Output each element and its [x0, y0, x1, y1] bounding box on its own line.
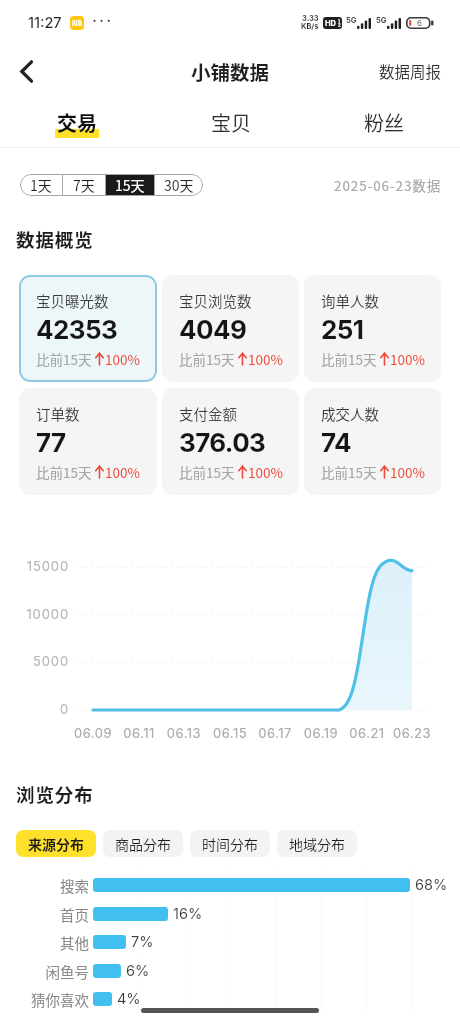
staticText: 浏览分布: [16, 781, 94, 808]
staticText: 1: [338, 19, 340, 24]
staticText: 其他: [0, 932, 89, 953]
staticText: 06.15: [205, 725, 255, 741]
staticText: 5G: [376, 16, 387, 25]
staticText: 06.21: [342, 725, 392, 741]
staticText: 3.33: [302, 14, 319, 23]
staticText: KB/s: [301, 22, 319, 31]
staticText: 订单数: [36, 403, 80, 424]
button[interactable]: 1天: [20, 174, 62, 196]
staticText: 比前15天: [179, 349, 235, 369]
staticText: 比前15天: [36, 462, 92, 482]
staticText: 粉丝: [364, 108, 404, 137]
staticText: 搜索: [0, 875, 89, 896]
staticText: 商品分布: [115, 834, 171, 854]
staticText: 10000: [0, 606, 69, 622]
staticText: 16%: [173, 905, 203, 923]
staticText: 5000: [0, 653, 69, 669]
staticText: 支付金额: [179, 403, 237, 424]
staticText: 比前15天: [321, 349, 377, 369]
button[interactable]: 支付金额: [162, 388, 299, 495]
staticText: 7%: [131, 933, 154, 951]
staticText: 100%: [390, 349, 425, 369]
staticText: 2025-06-23数据: [334, 175, 442, 195]
staticText: 询单人数: [321, 290, 379, 311]
staticText: 06.11: [114, 725, 164, 741]
button[interactable]: 30天: [155, 174, 203, 196]
staticText: 交易: [57, 108, 97, 137]
staticText: 15000: [0, 558, 69, 574]
staticText: 6: [417, 18, 422, 28]
staticText: 376.03: [179, 427, 266, 458]
staticText: 宝贝浏览数: [179, 290, 252, 311]
staticText: 时间分布: [202, 834, 258, 854]
button[interactable]: 订单数: [19, 388, 157, 495]
staticText: 宝贝曝光数: [36, 290, 109, 311]
staticText: 100%: [105, 462, 140, 482]
button[interactable]: 7天: [63, 174, 105, 196]
staticText: 100%: [248, 349, 283, 369]
staticText: 地域分布: [289, 834, 345, 854]
staticText: 0: [0, 701, 69, 717]
button[interactable]: 询单人数: [304, 275, 441, 382]
staticText: 猜你喜欢: [0, 989, 89, 1010]
staticText: 68%: [415, 876, 448, 894]
staticText: ···: [91, 11, 113, 28]
staticText: 6%: [126, 962, 150, 980]
staticText: 06.13: [159, 725, 209, 741]
staticText: 闲鱼: [72, 19, 83, 27]
staticText: 闲鱼号: [0, 961, 89, 982]
staticText: 宝贝: [211, 108, 251, 137]
staticText: 比前15天: [179, 462, 235, 482]
staticText: 77: [36, 427, 66, 458]
button[interactable]: 宝贝曝光数: [19, 275, 157, 382]
staticText: 1天: [30, 175, 52, 195]
button[interactable]: 成交人数: [304, 388, 441, 495]
staticText: 来源分布: [28, 834, 84, 854]
staticText: 15天: [115, 175, 145, 195]
staticText: 4049: [179, 314, 247, 345]
staticText: 42353: [36, 314, 118, 345]
staticText: 2: [338, 23, 341, 28]
staticText: 30天: [164, 175, 194, 195]
button[interactable]: 15天: [106, 174, 154, 196]
button[interactable]: 时间分布: [190, 830, 270, 857]
staticText: 100%: [390, 462, 425, 482]
staticText: 比前15天: [36, 349, 92, 369]
button[interactable]: 粉丝: [307, 97, 460, 147]
button[interactable]: 地域分布: [277, 830, 357, 857]
staticText: 06.09: [68, 725, 118, 741]
staticText: 成交人数: [321, 403, 379, 424]
staticText: 4%: [117, 990, 141, 1008]
button[interactable]: 交易: [0, 97, 154, 147]
staticText: 数据周报: [379, 60, 442, 82]
staticText: 小铺数据: [191, 57, 270, 85]
button[interactable]: 宝贝: [154, 97, 307, 147]
staticText: 06.19: [296, 725, 346, 741]
staticText: 数据概览: [16, 226, 94, 253]
button[interactable]: 商品分布: [103, 830, 183, 857]
staticText: 100%: [105, 349, 140, 369]
button[interactable]: 宝贝浏览数: [162, 275, 299, 382]
button[interactable]: 来源分布: [16, 830, 96, 857]
staticText: 首页: [0, 904, 89, 925]
staticText: 5G: [346, 16, 357, 25]
staticText: 100%: [248, 462, 283, 482]
staticText: 74: [321, 427, 351, 458]
staticText: 11:27: [28, 14, 62, 32]
button[interactable]: Back: [4, 49, 48, 93]
staticText: 06.23: [387, 725, 437, 741]
staticText: 06.17: [250, 725, 300, 741]
staticText: 251: [321, 314, 364, 345]
staticText: 比前15天: [321, 462, 377, 482]
staticText: HD: [325, 19, 337, 28]
staticText: 7天: [73, 175, 95, 195]
button[interactable]: 数据周报: [379, 60, 442, 82]
